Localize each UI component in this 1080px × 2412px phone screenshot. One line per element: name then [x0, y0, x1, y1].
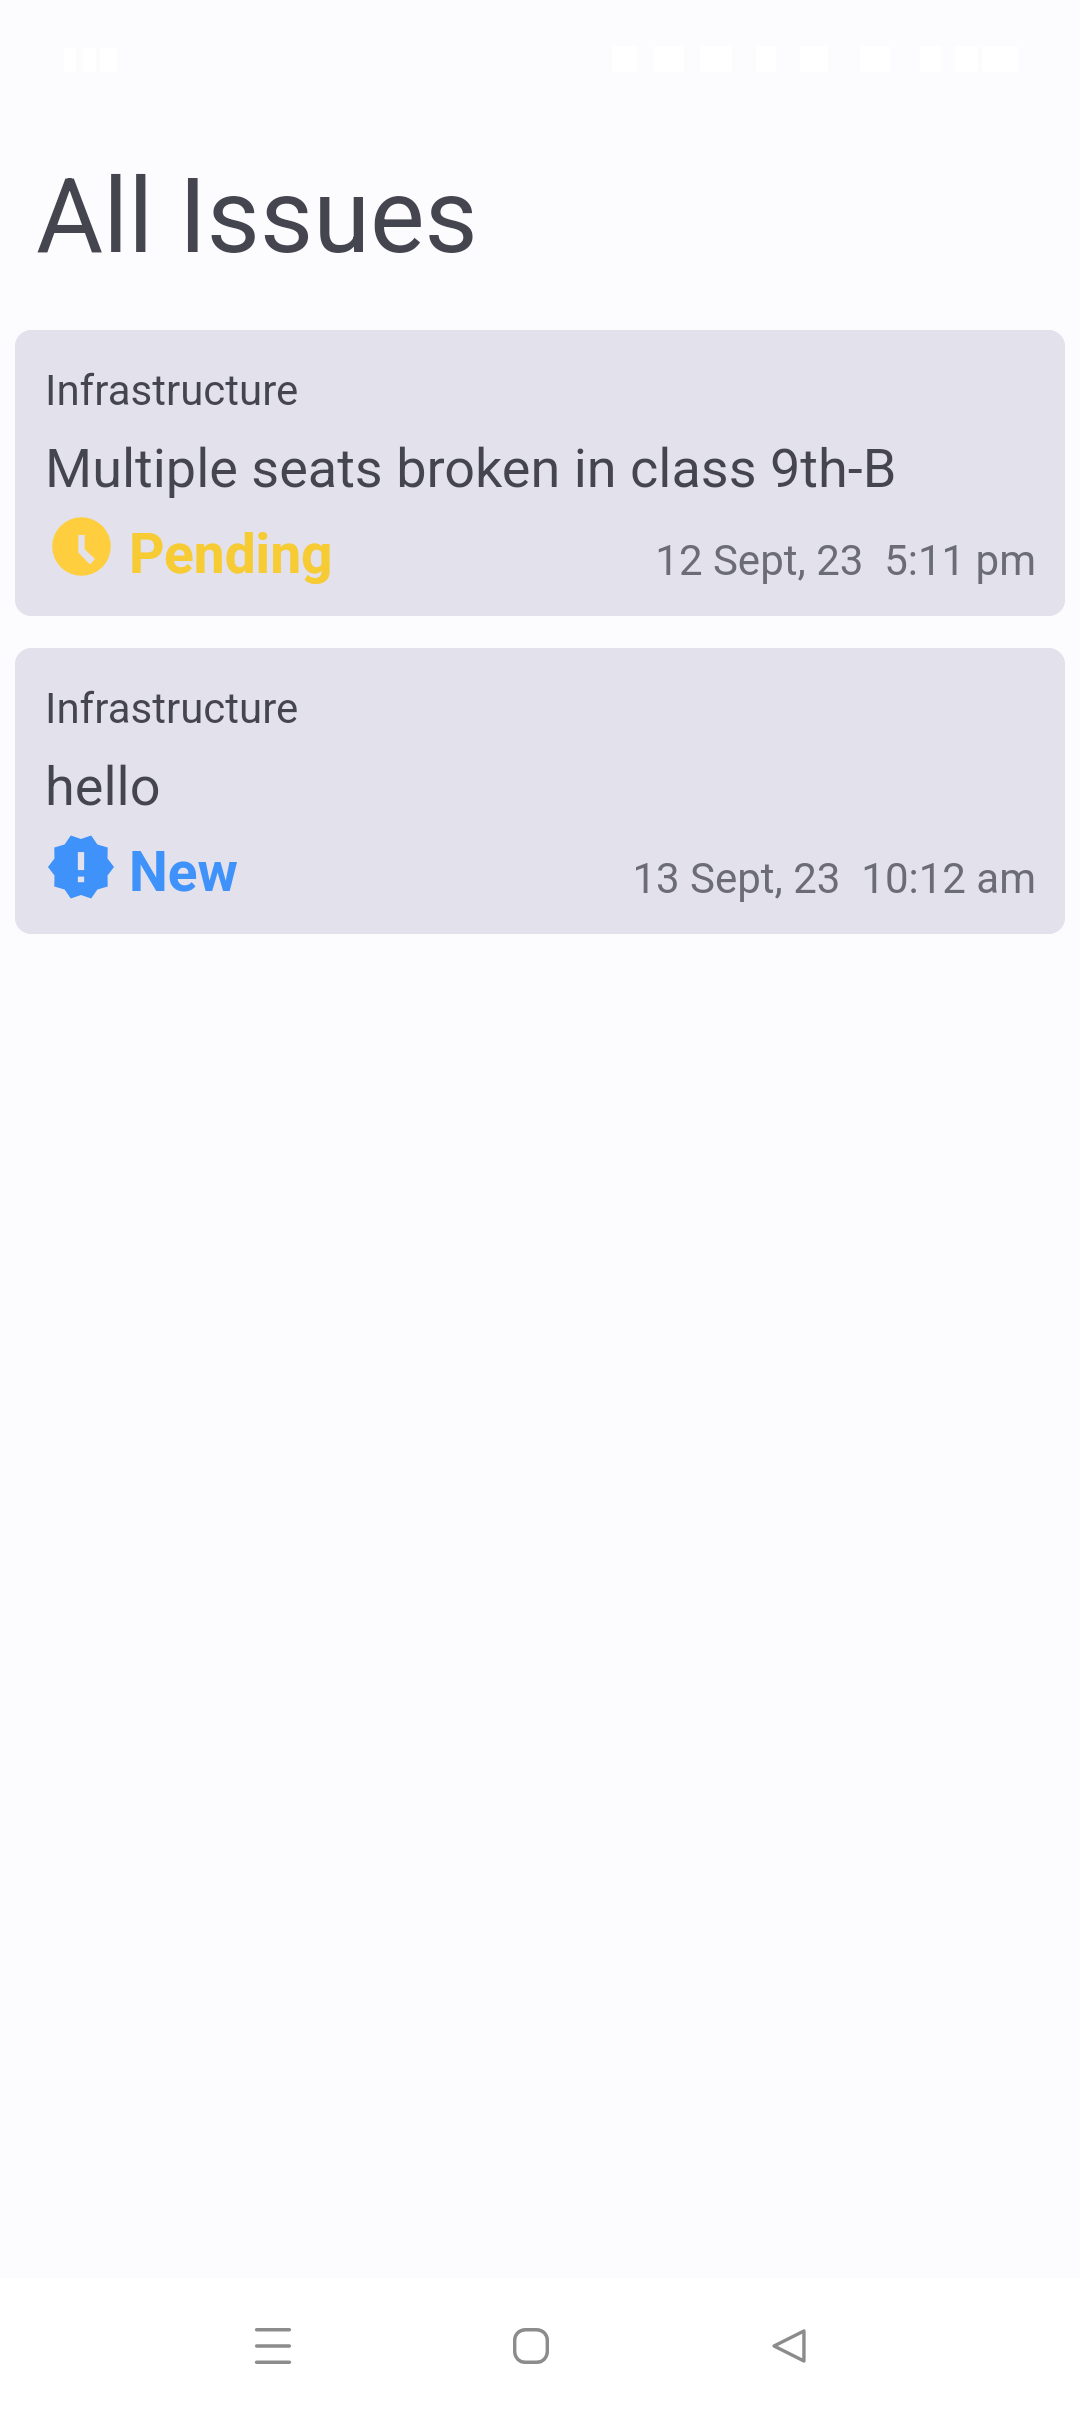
button[interactable]: Infrastructure: [15, 330, 1065, 616]
button[interactable]: Home: [481, 2296, 581, 2396]
staticText: hello: [45, 755, 161, 818]
staticText: Infrastructure: [45, 366, 299, 415]
staticText: Pending: [129, 522, 333, 586]
button[interactable]: Recent apps: [223, 2296, 323, 2396]
staticText: New: [129, 840, 238, 904]
staticText: 13 Sept, 23 10:12 am: [632, 854, 1036, 903]
button[interactable]: Back: [739, 2296, 839, 2396]
button[interactable]: Infrastructure: [15, 648, 1065, 934]
staticText: Infrastructure: [45, 684, 299, 733]
staticText: 12 Sept, 23 5:11 pm: [655, 536, 1036, 585]
staticText: All Issues: [36, 156, 478, 277]
staticText: Multiple seats broken in class 9th-B: [45, 437, 897, 500]
